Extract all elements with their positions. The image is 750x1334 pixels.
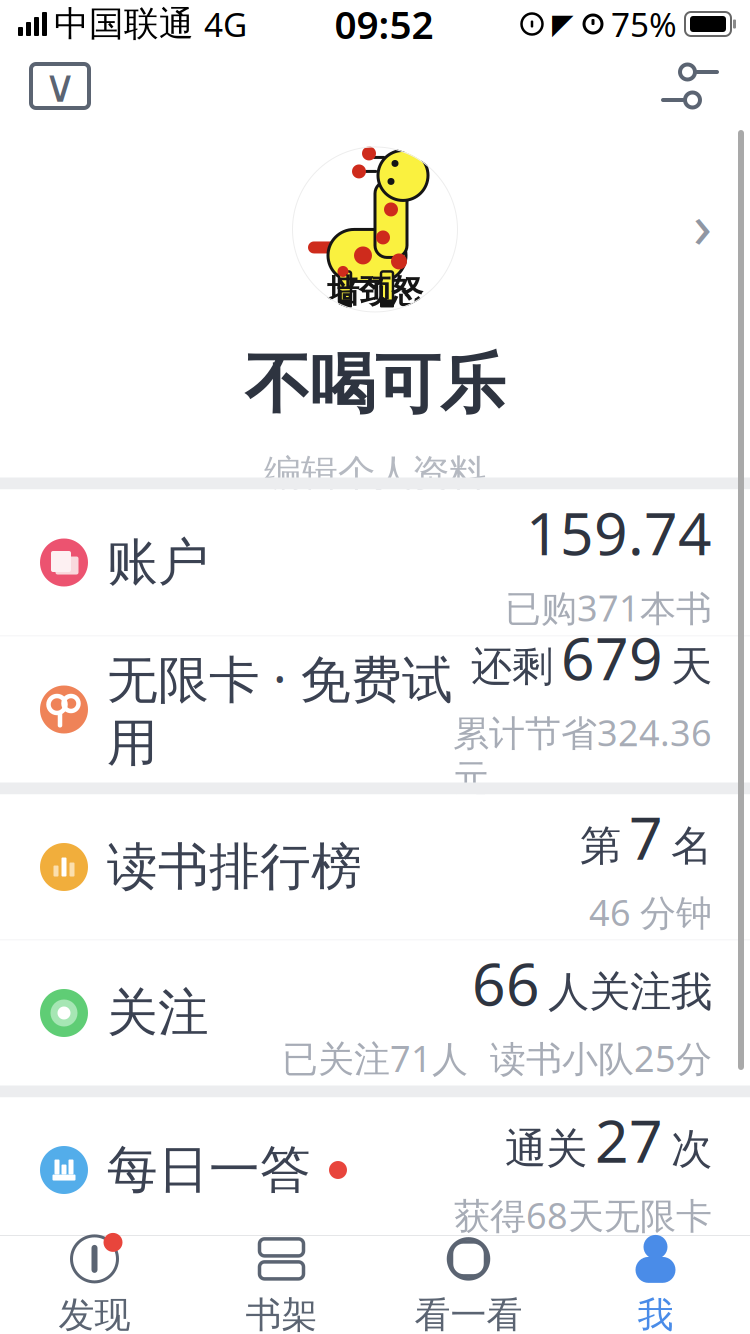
staticText: 已关注71人 读书小队25分 (282, 1034, 712, 1082)
staticText: 通关 (505, 1124, 587, 1174)
staticText: 第 (580, 821, 621, 871)
staticText: 书架 (245, 1293, 317, 1334)
button[interactable]: 看一看 (375, 1236, 562, 1334)
staticText: 159.74 (526, 494, 712, 571)
staticText: 7 (629, 798, 663, 876)
staticText: 读书排行榜 (107, 836, 362, 898)
staticText: 46 分钟 (589, 888, 712, 936)
staticText: 次 (671, 1124, 712, 1174)
staticText: 每日一答 (107, 1139, 311, 1201)
staticText: 关注 (107, 982, 209, 1044)
staticText: › (693, 184, 712, 265)
staticText: 66 (472, 944, 540, 1022)
staticText: 09:52 (334, 0, 433, 50)
staticText: 27 (595, 1101, 663, 1179)
button[interactable]: 设置 (642, 48, 738, 124)
staticText: 编辑个人资料 (264, 451, 486, 497)
staticText: 已购371本书 (505, 584, 712, 631)
staticText: 无限卡 · 免费试用 (107, 645, 453, 774)
staticText: ∨ (43, 60, 76, 112)
staticText: 发现 (58, 1293, 130, 1334)
staticText: 获得68天无限卡 (454, 1191, 712, 1239)
button[interactable]: 读书排行榜 (0, 794, 750, 939)
button[interactable]: 发现 (1, 1236, 188, 1334)
staticText: 看一看 (414, 1293, 522, 1334)
staticText: 不喝可乐 (245, 344, 505, 425)
staticText: 中国联通 (54, 3, 194, 45)
button[interactable]: 账户 (0, 489, 750, 635)
staticText: 累计节省324.36元 (453, 708, 712, 800)
button[interactable]: 墙颈怒 (0, 116, 750, 477)
staticText: 4G (204, 2, 247, 46)
staticText: 还剩 (471, 641, 553, 692)
staticText: 679 (561, 618, 663, 696)
staticText: ◤ (552, 8, 574, 40)
staticText: 天 (671, 641, 712, 692)
staticText: 75% (611, 2, 677, 46)
button[interactable]: 关注 (0, 940, 750, 1085)
button[interactable]: 无限卡 · 免费试用 (0, 636, 750, 782)
staticText: 人关注我 (548, 967, 712, 1017)
button[interactable]: 书架 (188, 1236, 375, 1334)
button[interactable]: 我 (562, 1236, 749, 1334)
staticText: 名 (671, 821, 712, 871)
button[interactable]: 消息 (12, 48, 108, 124)
staticText: 墙颈怒 (327, 272, 423, 311)
button[interactable]: 每日一答 (0, 1097, 750, 1242)
staticText: 我 (637, 1293, 673, 1334)
staticText: 账户 (107, 531, 209, 594)
